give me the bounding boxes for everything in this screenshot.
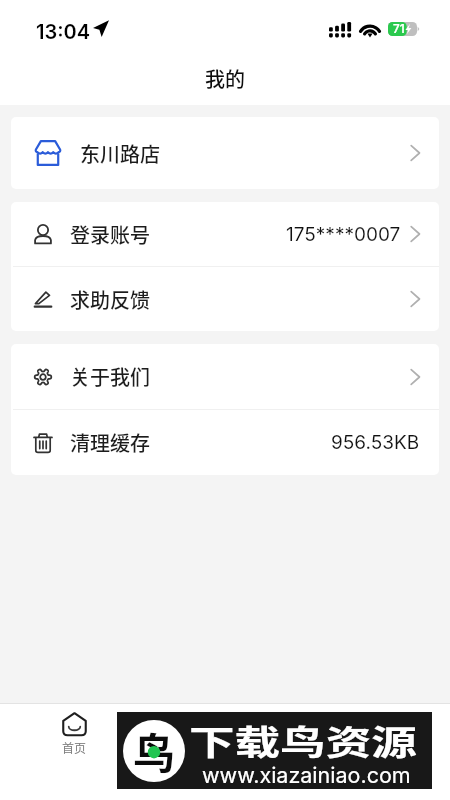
staticText: 下载鸟资源	[189, 716, 417, 765]
staticText: 东川路店	[80, 139, 160, 168]
staticText: 13:04	[36, 20, 91, 44]
staticText: 175****0007	[286, 223, 401, 246]
button[interactable]: 关于我们	[11, 344, 439, 409]
button[interactable]: 东川路店	[11, 117, 439, 189]
staticText: www.xiazainiao.com	[202, 762, 411, 788]
button[interactable]: 登录账号	[11, 202, 439, 266]
staticText: 清理缓存	[70, 428, 150, 457]
staticText: 我的	[205, 64, 245, 93]
staticText: 956.53KB	[331, 431, 420, 454]
staticText: 求助反馈	[70, 285, 150, 314]
staticText: 71	[393, 22, 405, 36]
staticText: 鸟	[133, 720, 176, 781]
staticText: 首页	[62, 739, 87, 756]
button[interactable]: 清理缓存	[11, 410, 439, 475]
button[interactable]: 求助反馈	[11, 267, 439, 331]
staticText: 登录账号	[70, 220, 150, 249]
staticText: 关于我们	[70, 362, 150, 391]
button[interactable]: 首页	[37, 712, 112, 768]
